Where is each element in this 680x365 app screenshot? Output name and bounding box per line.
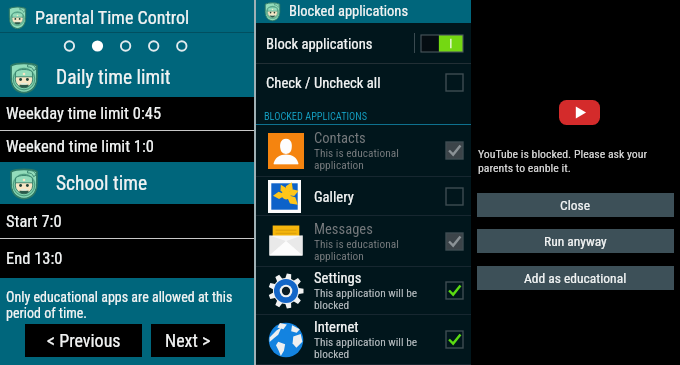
staticText: Blocked applications	[289, 3, 409, 20]
button[interactable]: Internet	[256, 315, 471, 364]
button[interactable]: Weekend time limit 1:0	[0, 131, 254, 162]
other: YouTube	[559, 100, 600, 125]
button[interactable]: Add as educational	[477, 266, 674, 290]
staticText: This is educational application	[314, 146, 399, 172]
button[interactable]: End 13:0	[0, 239, 254, 278]
staticText: Block applications	[266, 35, 373, 52]
staticText: Messages	[314, 220, 373, 237]
button[interactable]: School time	[0, 162, 254, 204]
staticText: Start 7:0	[6, 212, 62, 231]
staticText: BLOCKED APPLICATIONS	[264, 110, 367, 122]
staticText: This is educational application	[314, 237, 399, 263]
staticText: Only educational apps are allowed at thi…	[6, 289, 245, 321]
staticText: Weekday time limit 0:45	[6, 104, 162, 123]
staticText: Next >	[165, 330, 211, 351]
staticText: Check / Uncheck all	[266, 74, 381, 91]
button[interactable]: Weekday time limit 0:45	[0, 97, 254, 130]
button[interactable]: Close	[477, 193, 674, 217]
button[interactable]: Daily time limit	[0, 58, 254, 97]
staticText: < Previous	[47, 330, 121, 351]
staticText: Run anyway	[544, 233, 607, 249]
staticText: Internet	[314, 318, 359, 335]
button[interactable]: Start 7:0	[0, 204, 254, 238]
staticText: This application will be blocked	[314, 335, 418, 361]
button[interactable]: Check / Uncheck all	[256, 64, 471, 97]
staticText: Gallery	[314, 188, 354, 205]
staticText: Add as educational	[524, 270, 627, 286]
staticText: Settings	[314, 269, 362, 286]
staticText: Weekend time limit 1:0	[6, 137, 154, 156]
staticText: Close	[560, 197, 591, 213]
button[interactable]: Messages	[256, 216, 471, 266]
button[interactable]: Block applications	[256, 23, 471, 63]
button[interactable]: Contacts	[256, 125, 471, 176]
staticText: Parental Time Control	[35, 7, 190, 28]
button[interactable]: Gallery	[256, 177, 471, 215]
staticText: This application will be blocked	[314, 286, 418, 312]
button[interactable]: Settings	[256, 267, 471, 314]
staticText: Daily time limit	[56, 66, 171, 89]
staticText: School time	[56, 172, 148, 195]
staticText: End 13:0	[6, 249, 63, 268]
staticText: Contacts	[314, 129, 366, 146]
button[interactable]: Run anyway	[477, 229, 674, 253]
button[interactable]: < Previous	[25, 324, 142, 357]
staticText: YouTube is blocked. Please ask your pare…	[478, 147, 660, 175]
button[interactable]: Next >	[151, 324, 225, 357]
